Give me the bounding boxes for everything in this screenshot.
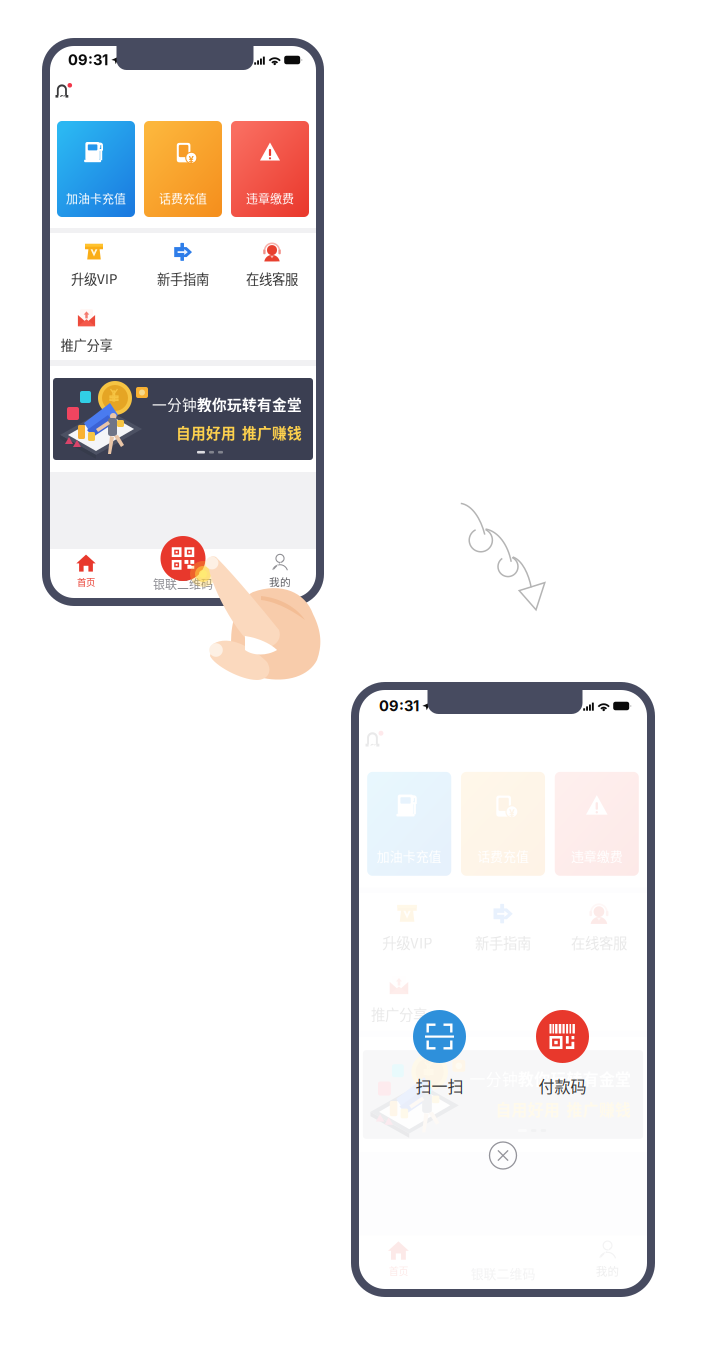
button[interactable]: 我的 <box>240 549 320 606</box>
staticText: 首页 <box>77 575 95 588</box>
button[interactable]: ¥ <box>453 765 531 861</box>
button[interactable]: Notifications <box>53 82 71 99</box>
button[interactable]: 推广分享 <box>351 952 440 998</box>
button[interactable]: 加油卡充值 <box>366 765 444 861</box>
button[interactable]: ¥ <box>144 121 222 217</box>
button[interactable]: Close <box>489 1142 516 1169</box>
staticText: 话费充值 <box>159 190 207 207</box>
staticText: 扫一扫 <box>415 1074 463 1097</box>
button[interactable]: 新手指南 <box>447 886 536 932</box>
staticText: 教你玩转有金堂 <box>506 1037 611 1059</box>
staticText: 09:31 <box>68 51 108 69</box>
staticText: 推广分享 <box>369 979 421 998</box>
staticText: ¥ <box>498 798 503 809</box>
button[interactable]: 在线客服 <box>536 886 625 932</box>
staticText: 我的 <box>269 574 291 589</box>
staticText: 一分钟 <box>152 393 197 415</box>
staticText: 银联二维码 <box>153 575 213 592</box>
staticText: 在线客服 <box>246 269 298 288</box>
staticText: 新手指南 <box>157 269 209 288</box>
button[interactable]: 加油卡充值 <box>57 121 135 217</box>
staticText: 自用好用 推广赚钱 <box>176 422 302 443</box>
staticText: 一分钟 <box>461 1037 506 1059</box>
button[interactable]: 银联二维码 <box>143 549 223 606</box>
button[interactable]: Notifications <box>362 726 380 743</box>
staticText: 升级VIP <box>380 913 426 932</box>
staticText: 推广分享 <box>60 335 112 354</box>
staticText: 违章缴费 <box>246 190 294 207</box>
button[interactable]: UnionPay QR code <box>160 536 205 581</box>
staticText: 加油卡充值 <box>66 190 126 207</box>
button[interactable]: 升级VIP <box>358 886 447 932</box>
staticText: 升级VIP <box>71 269 117 288</box>
button[interactable]: 新手指南 <box>138 242 227 288</box>
button[interactable]: 升级VIP <box>49 242 138 288</box>
button[interactable]: 首页 <box>355 1193 435 1250</box>
staticText: 新手指南 <box>466 913 518 932</box>
button[interactable]: 违章缴费 <box>231 121 309 217</box>
button[interactable]: 付款码 <box>532 1010 592 1097</box>
staticText: ¥ <box>189 154 194 165</box>
button[interactable]: 首页 <box>46 549 126 606</box>
button[interactable]: 推广分享 <box>42 308 131 354</box>
staticText: 自用好用 推广赚钱 <box>485 1066 611 1087</box>
staticText: 付款码 <box>538 1074 586 1097</box>
button[interactable]: 一分钟 <box>53 378 313 460</box>
staticText: 09:31 <box>379 697 419 715</box>
staticText: 在线客服 <box>555 913 607 932</box>
staticText: 教你玩转有金堂 <box>197 393 302 415</box>
button[interactable]: 一分钟 <box>362 1022 622 1104</box>
button[interactable]: 扫一扫 <box>409 1010 469 1097</box>
button[interactable]: 违章缴费 <box>540 765 618 861</box>
button[interactable]: 在线客服 <box>227 242 316 288</box>
